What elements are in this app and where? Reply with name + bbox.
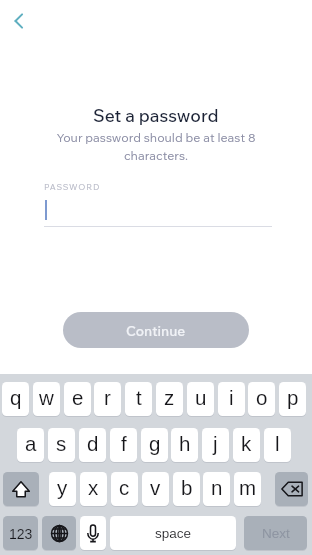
button[interactable]: Change keyboard	[42, 516, 76, 550]
staticText: m	[239, 476, 257, 499]
staticText: y	[57, 476, 68, 499]
staticText: Continue	[126, 322, 186, 339]
button[interactable]: q	[2, 382, 29, 416]
staticText: n	[211, 476, 223, 499]
button[interactable]: space	[110, 516, 236, 550]
button[interactable]: Next	[244, 516, 307, 550]
button[interactable]: b	[173, 472, 200, 506]
button[interactable]: k	[233, 428, 260, 462]
button[interactable]: Back	[2, 4, 36, 38]
staticText: Next	[262, 526, 290, 541]
button[interactable]: Shift	[3, 472, 39, 506]
staticText: h	[179, 432, 191, 455]
button[interactable]: t	[125, 382, 152, 416]
staticText: l	[275, 432, 280, 455]
staticText: Set a password	[93, 104, 219, 126]
button[interactable]: j	[202, 428, 229, 462]
button[interactable]: u	[187, 382, 214, 416]
staticText: z	[164, 386, 175, 409]
staticText: t	[136, 386, 142, 409]
button[interactable]: l	[264, 428, 291, 462]
button[interactable]: r	[94, 382, 121, 416]
button[interactable]: Voice input	[80, 516, 106, 550]
staticText: PASSWORD	[44, 181, 101, 192]
staticText: 123	[9, 526, 33, 542]
staticText: c	[119, 476, 130, 499]
staticText: w	[39, 386, 54, 409]
button[interactable]: d	[79, 428, 106, 462]
button[interactable]: g	[141, 428, 168, 462]
button[interactable]: z	[156, 382, 183, 416]
staticText: e	[72, 386, 84, 409]
staticText: k	[241, 432, 252, 455]
staticText: i	[229, 386, 234, 409]
button[interactable]: f	[110, 428, 137, 462]
button[interactable]: x	[80, 472, 107, 506]
staticText: r	[104, 386, 111, 409]
button[interactable]: o	[248, 382, 275, 416]
button[interactable]: i	[218, 382, 245, 416]
button[interactable]: m	[234, 472, 261, 506]
button[interactable]: n	[203, 472, 230, 506]
button[interactable]: s	[48, 428, 75, 462]
staticText: a	[25, 432, 37, 455]
staticText: p	[287, 386, 299, 409]
staticText: o	[256, 386, 268, 409]
button[interactable]: e	[64, 382, 91, 416]
staticText: g	[149, 432, 161, 455]
button[interactable]: c	[111, 472, 138, 506]
staticText: q	[10, 386, 22, 409]
button[interactable]: Continue	[63, 312, 249, 348]
staticText: x	[88, 476, 99, 499]
button[interactable]: v	[142, 472, 169, 506]
staticText: d	[87, 432, 99, 455]
staticText: s	[56, 432, 67, 455]
staticText: j	[213, 432, 218, 455]
staticText: space	[155, 526, 192, 541]
staticText: Your password should be at least 8 chara…	[44, 130, 268, 163]
button[interactable]: p	[279, 382, 306, 416]
staticText: v	[150, 476, 161, 499]
button[interactable]: h	[171, 428, 198, 462]
staticText: f	[121, 432, 127, 455]
staticText: b	[181, 476, 193, 499]
button[interactable]: w	[33, 382, 60, 416]
button[interactable]: y	[49, 472, 76, 506]
button[interactable]: 123	[3, 516, 38, 550]
staticText: u	[195, 386, 207, 409]
button[interactable]: Backspace	[275, 472, 308, 506]
button[interactable]: a	[17, 428, 44, 462]
